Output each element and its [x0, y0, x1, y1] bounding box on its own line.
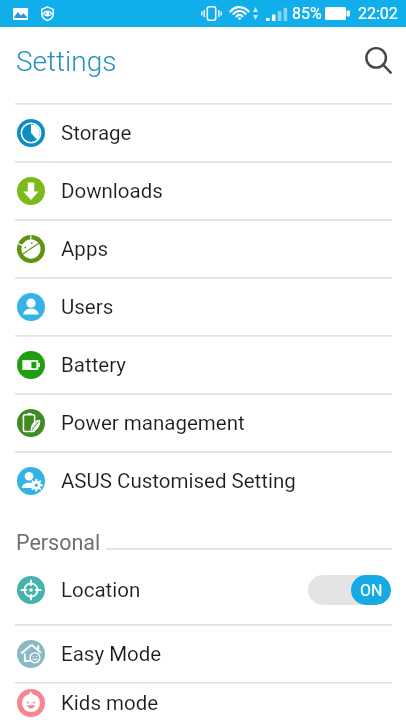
staticText: Battery	[61, 353, 127, 377]
button[interactable]: Easy Mode	[0, 625, 406, 682]
staticText: Kids mode	[61, 691, 159, 715]
staticText: Downloads	[61, 179, 163, 203]
staticText: Personal	[16, 530, 101, 555]
button[interactable]: Location on	[308, 575, 391, 605]
staticText: 85%	[292, 4, 322, 23]
staticText: Storage	[61, 121, 132, 145]
staticText: Power management	[61, 411, 245, 435]
button[interactable]: Apps	[0, 220, 406, 277]
staticText: ASUS Customised Setting	[61, 469, 296, 493]
staticText: 22:02	[358, 4, 398, 23]
staticText: Easy Mode	[61, 642, 162, 666]
staticText: Users	[61, 295, 114, 319]
button[interactable]: Battery	[0, 336, 406, 393]
button[interactable]: Downloads	[0, 162, 406, 219]
staticText: Apps	[61, 237, 108, 261]
button[interactable]: Power management	[0, 394, 406, 451]
staticText: Location	[61, 578, 141, 602]
button[interactable]: Storage	[0, 104, 406, 161]
button[interactable]: Users	[0, 278, 406, 335]
button[interactable]: ASUS Customised Setting	[0, 452, 406, 509]
staticText: ON	[360, 581, 383, 600]
button[interactable]: Search	[353, 35, 405, 87]
button[interactable]: Kids mode	[0, 683, 406, 723]
staticText: Settings	[16, 45, 117, 78]
button[interactable]: Location	[0, 566, 406, 624]
